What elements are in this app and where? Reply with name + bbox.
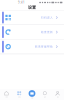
staticText: 联系客服帮助 [35,45,53,48]
button[interactable]: 首页 [0,91,13,98]
button[interactable]: 发现 [13,91,26,98]
staticText: 9:41 [18,1,25,4]
staticText: 扫码进入 [41,16,53,19]
button[interactable]: 扫码进入 [0,11,64,25]
staticText: 设置 [28,5,36,10]
button[interactable]: 联系客服帮助 [0,40,64,54]
button[interactable]: 我的 [51,91,64,98]
staticText: 检查更新 [41,30,53,34]
button[interactable]: 消息 [26,90,38,99]
button[interactable]: 检查更新 [0,25,64,39]
button[interactable]: 动态 [38,91,51,98]
